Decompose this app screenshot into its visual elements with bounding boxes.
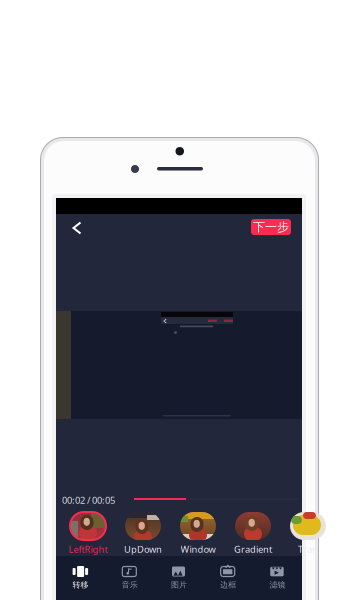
button[interactable]: 图片 [154,556,204,600]
staticText: 滤镜 [269,580,285,590]
button[interactable]: UpDown [117,512,169,555]
button[interactable]: 音乐 [105,556,154,600]
staticText: Tran [298,543,318,555]
staticText: Gradient [234,543,272,555]
staticText: 00:02 / 00:05 [62,494,115,506]
button[interactable]: Gradient [227,512,279,555]
button[interactable]: Back [66,217,88,239]
button[interactable]: 滤镜 [253,556,302,600]
staticText: 音乐 [122,580,138,590]
staticText: 转移 [73,580,89,590]
button[interactable]: 边框 [204,556,253,600]
staticText: 下一步 [253,220,289,234]
staticText: 边框 [220,580,236,590]
staticText: LeftRight [68,543,107,555]
button[interactable]: Window [172,512,224,555]
staticText: UpDown [124,543,162,555]
staticText: Window [180,543,215,555]
button[interactable]: 转移 [56,556,105,600]
button[interactable]: LeftRight [62,512,114,555]
button[interactable]: 下一步 [251,219,291,235]
button[interactable]: Tran [282,512,334,555]
staticText: 图片 [171,580,187,590]
